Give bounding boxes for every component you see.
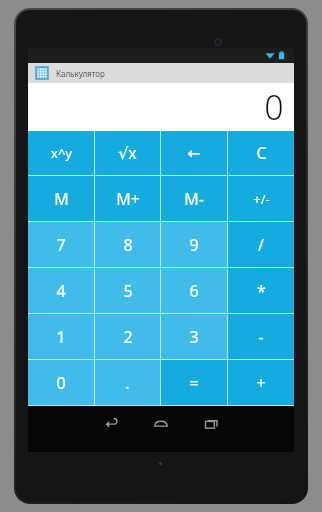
staticText: 0: [264, 84, 284, 130]
staticText: -: [258, 326, 264, 348]
staticText: 0: [56, 372, 66, 394]
button[interactable]: =: [161, 360, 227, 405]
staticText: M: [54, 188, 69, 210]
staticText: C: [256, 142, 267, 164]
staticText: 9: [189, 234, 199, 256]
staticText: 6: [189, 280, 199, 302]
staticText: /: [258, 234, 264, 256]
staticText: 2: [123, 326, 133, 348]
staticText: x^y: [51, 144, 72, 162]
button[interactable]: -: [228, 314, 294, 359]
staticText: +/-: [253, 190, 270, 208]
button[interactable]: 1: [28, 314, 94, 359]
button[interactable]: 5: [95, 268, 160, 313]
staticText: =: [189, 372, 199, 394]
button[interactable]: .: [95, 360, 160, 405]
staticText: M-: [184, 188, 204, 210]
staticText: *: [257, 280, 266, 302]
button[interactable]: *: [228, 268, 294, 313]
staticText: 8: [123, 234, 133, 256]
staticText: ←: [187, 144, 201, 163]
button[interactable]: Backspace: [161, 131, 227, 175]
button[interactable]: Recent apps: [200, 412, 222, 434]
staticText: +: [256, 372, 266, 394]
button[interactable]: Back: [100, 412, 122, 434]
button[interactable]: /: [228, 222, 294, 267]
button[interactable]: 3: [161, 314, 227, 359]
button[interactable]: M+: [95, 176, 160, 221]
button[interactable]: √x: [95, 131, 160, 175]
staticText: 7: [56, 234, 66, 256]
button[interactable]: 8: [95, 222, 160, 267]
button[interactable]: x^y: [28, 131, 94, 175]
button[interactable]: 0: [28, 360, 94, 405]
button[interactable]: 7: [28, 222, 94, 267]
staticText: 3: [189, 326, 199, 348]
button[interactable]: 2: [95, 314, 160, 359]
button[interactable]: M: [28, 176, 94, 221]
staticText: 1: [56, 326, 66, 348]
staticText: 5: [123, 280, 133, 302]
staticText: M+: [116, 188, 140, 210]
button[interactable]: M-: [161, 176, 227, 221]
button[interactable]: C: [228, 131, 294, 175]
button[interactable]: +/-: [228, 176, 294, 221]
button[interactable]: Home: [150, 412, 172, 434]
staticText: Калькулятор: [56, 68, 105, 79]
button[interactable]: 9: [161, 222, 227, 267]
button[interactable]: 6: [161, 268, 227, 313]
staticText: 4: [56, 280, 66, 302]
button[interactable]: +: [228, 360, 294, 405]
staticText: .: [125, 372, 130, 394]
staticText: √x: [118, 142, 137, 164]
button[interactable]: 4: [28, 268, 94, 313]
